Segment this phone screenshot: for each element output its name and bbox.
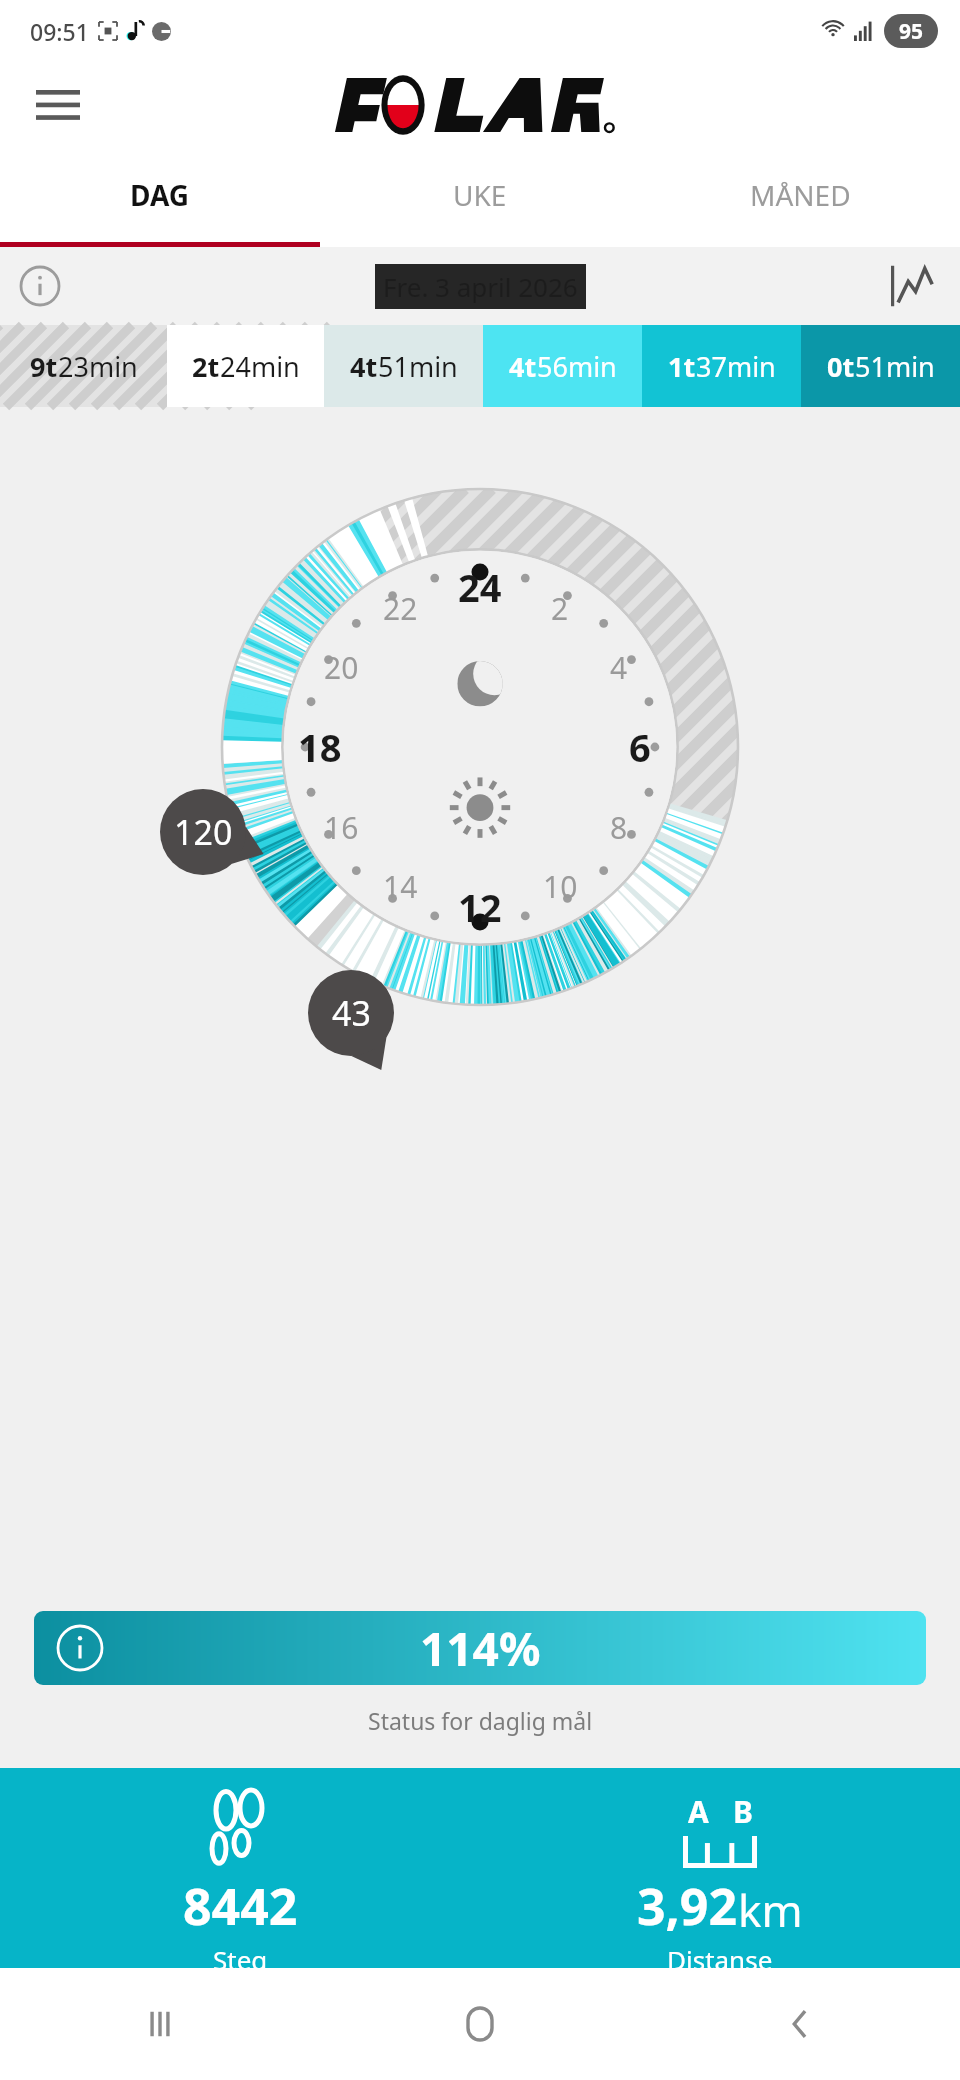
staticText: 23min <box>58 348 138 385</box>
button[interactable]: MÅNED <box>640 148 960 242</box>
staticText: 4 <box>610 647 628 688</box>
staticText: 0t <box>827 348 855 385</box>
staticText: UKE <box>453 176 507 214</box>
staticText: 4t <box>350 348 378 385</box>
button[interactable]: Trend <box>882 257 940 315</box>
button[interactable]: 114% <box>34 1611 926 1685</box>
button[interactable]: 1t <box>642 325 801 407</box>
staticText: km <box>738 1880 803 1940</box>
staticText: 2 <box>551 588 569 629</box>
staticText: 3,92 <box>637 1872 738 1940</box>
button[interactable]: 4t <box>483 325 642 407</box>
button[interactable]: 4t <box>324 325 483 407</box>
staticText: 2t <box>192 348 220 385</box>
staticText: 8442 <box>183 1872 298 1940</box>
button[interactable]: 0t <box>801 325 960 407</box>
staticText: 56min <box>537 348 617 385</box>
staticText: 24min <box>220 348 300 385</box>
staticText: 95 <box>899 17 924 46</box>
staticText: 09:51 <box>30 16 89 47</box>
staticText: B <box>733 1791 753 1832</box>
staticText: DAG <box>130 176 190 214</box>
staticText: 20 <box>324 647 359 688</box>
staticText: 43 <box>332 990 371 1036</box>
staticText: 24 <box>458 561 502 613</box>
staticText: 22 <box>383 588 418 629</box>
button[interactable]: 2t <box>167 325 324 407</box>
staticText: 1t <box>668 348 696 385</box>
staticText: Distanse <box>667 1942 773 1968</box>
staticText: 18 <box>298 721 342 773</box>
button[interactable]: 9t <box>0 325 167 407</box>
staticText: Fre. 3 april 2026 <box>383 269 578 304</box>
staticText: MÅNED <box>750 176 851 214</box>
staticText: 16 <box>324 807 359 848</box>
staticText: 9t <box>30 348 58 385</box>
staticText: 4t <box>509 348 537 385</box>
button[interactable]: Info <box>12 258 68 314</box>
staticText: 12 <box>458 881 502 933</box>
button[interactable]: Recents <box>0 1968 320 2080</box>
staticText: 8 <box>610 807 628 848</box>
button[interactable]: 8442 <box>0 1768 480 1968</box>
staticText: 14 <box>383 866 418 907</box>
button[interactable]: Menu <box>32 79 84 131</box>
staticText: Steg <box>213 1942 268 1968</box>
staticText: 10 <box>543 866 578 907</box>
staticText: 120 <box>174 809 233 855</box>
staticText: 6 <box>629 721 651 773</box>
staticText: Status for daglig mål <box>368 1705 593 1736</box>
staticText: 37min <box>696 348 776 385</box>
staticText: 51min <box>855 348 935 385</box>
button[interactable]: DAG <box>0 148 320 242</box>
staticText: 114% <box>420 1617 541 1680</box>
button[interactable]: Back <box>640 1968 960 2080</box>
button[interactable]: UKE <box>320 148 640 242</box>
button[interactable]: A <box>480 1768 960 1968</box>
button[interactable]: Fre. 3 april 2026 <box>383 269 578 304</box>
staticText: 51min <box>378 348 458 385</box>
button[interactable]: Home <box>320 1968 640 2080</box>
staticText: A <box>688 1791 709 1832</box>
